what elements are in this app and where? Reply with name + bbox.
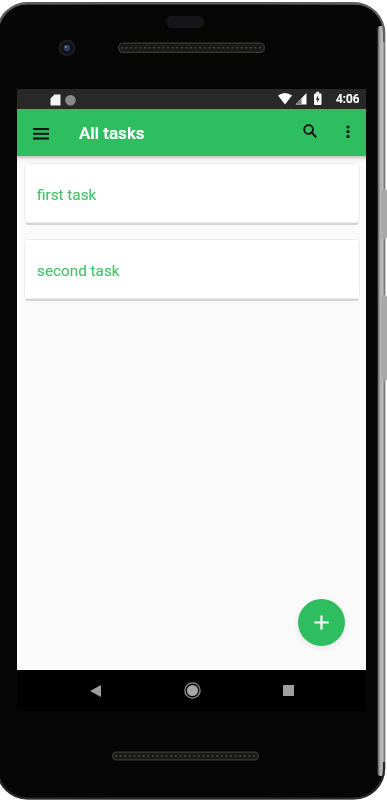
button[interactable] bbox=[335, 117, 361, 146]
staticText: All tasks bbox=[79, 123, 145, 143]
staticText: 4:06 bbox=[336, 92, 360, 106]
button[interactable] bbox=[175, 670, 209, 711]
button[interactable]: first task bbox=[24, 163, 360, 223]
staticText: second task bbox=[37, 262, 120, 280]
button[interactable] bbox=[78, 670, 112, 711]
button[interactable] bbox=[298, 599, 345, 646]
staticText: first task bbox=[37, 186, 97, 204]
button[interactable] bbox=[271, 670, 305, 711]
button[interactable]: second task bbox=[24, 239, 360, 299]
button[interactable] bbox=[25, 117, 56, 148]
button[interactable] bbox=[296, 117, 325, 146]
